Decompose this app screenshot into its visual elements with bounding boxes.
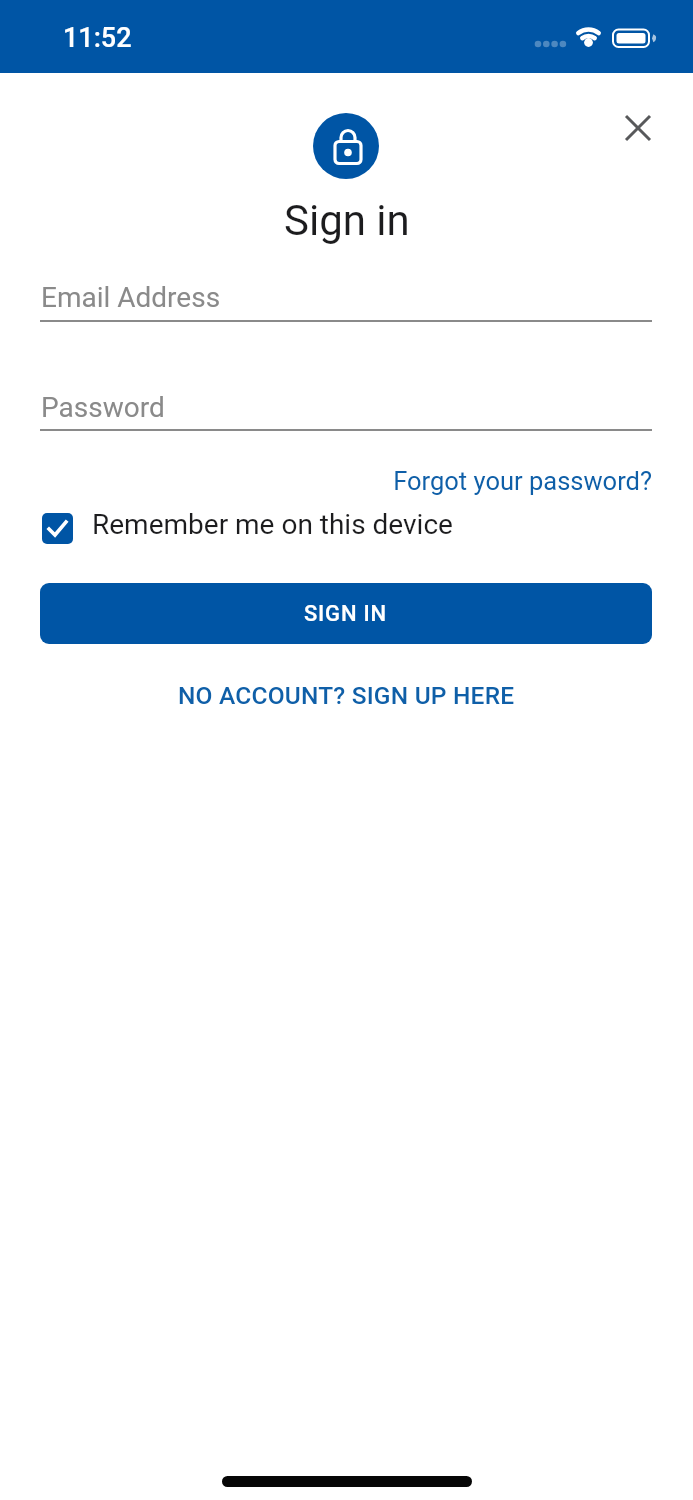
button[interactable]: Forgot your password?: [252, 466, 652, 496]
staticText: NO ACCOUNT? SIGN UP HERE: [178, 681, 515, 710]
staticText: 11:52: [63, 22, 132, 54]
staticText: Forgot your password?: [393, 466, 652, 496]
button[interactable]: [614, 104, 662, 152]
button[interactable]: NO ACCOUNT? SIGN UP HERE: [0, 681, 693, 710]
button[interactable]: SIGN IN: [40, 583, 652, 644]
button[interactable]: [42, 513, 73, 544]
staticText: Password: [41, 391, 165, 424]
staticText: Email Address: [41, 281, 221, 314]
staticText: SIGN IN: [304, 601, 388, 627]
staticText: Remember me on this device: [92, 508, 453, 541]
staticText: Sign in: [284, 196, 410, 245]
